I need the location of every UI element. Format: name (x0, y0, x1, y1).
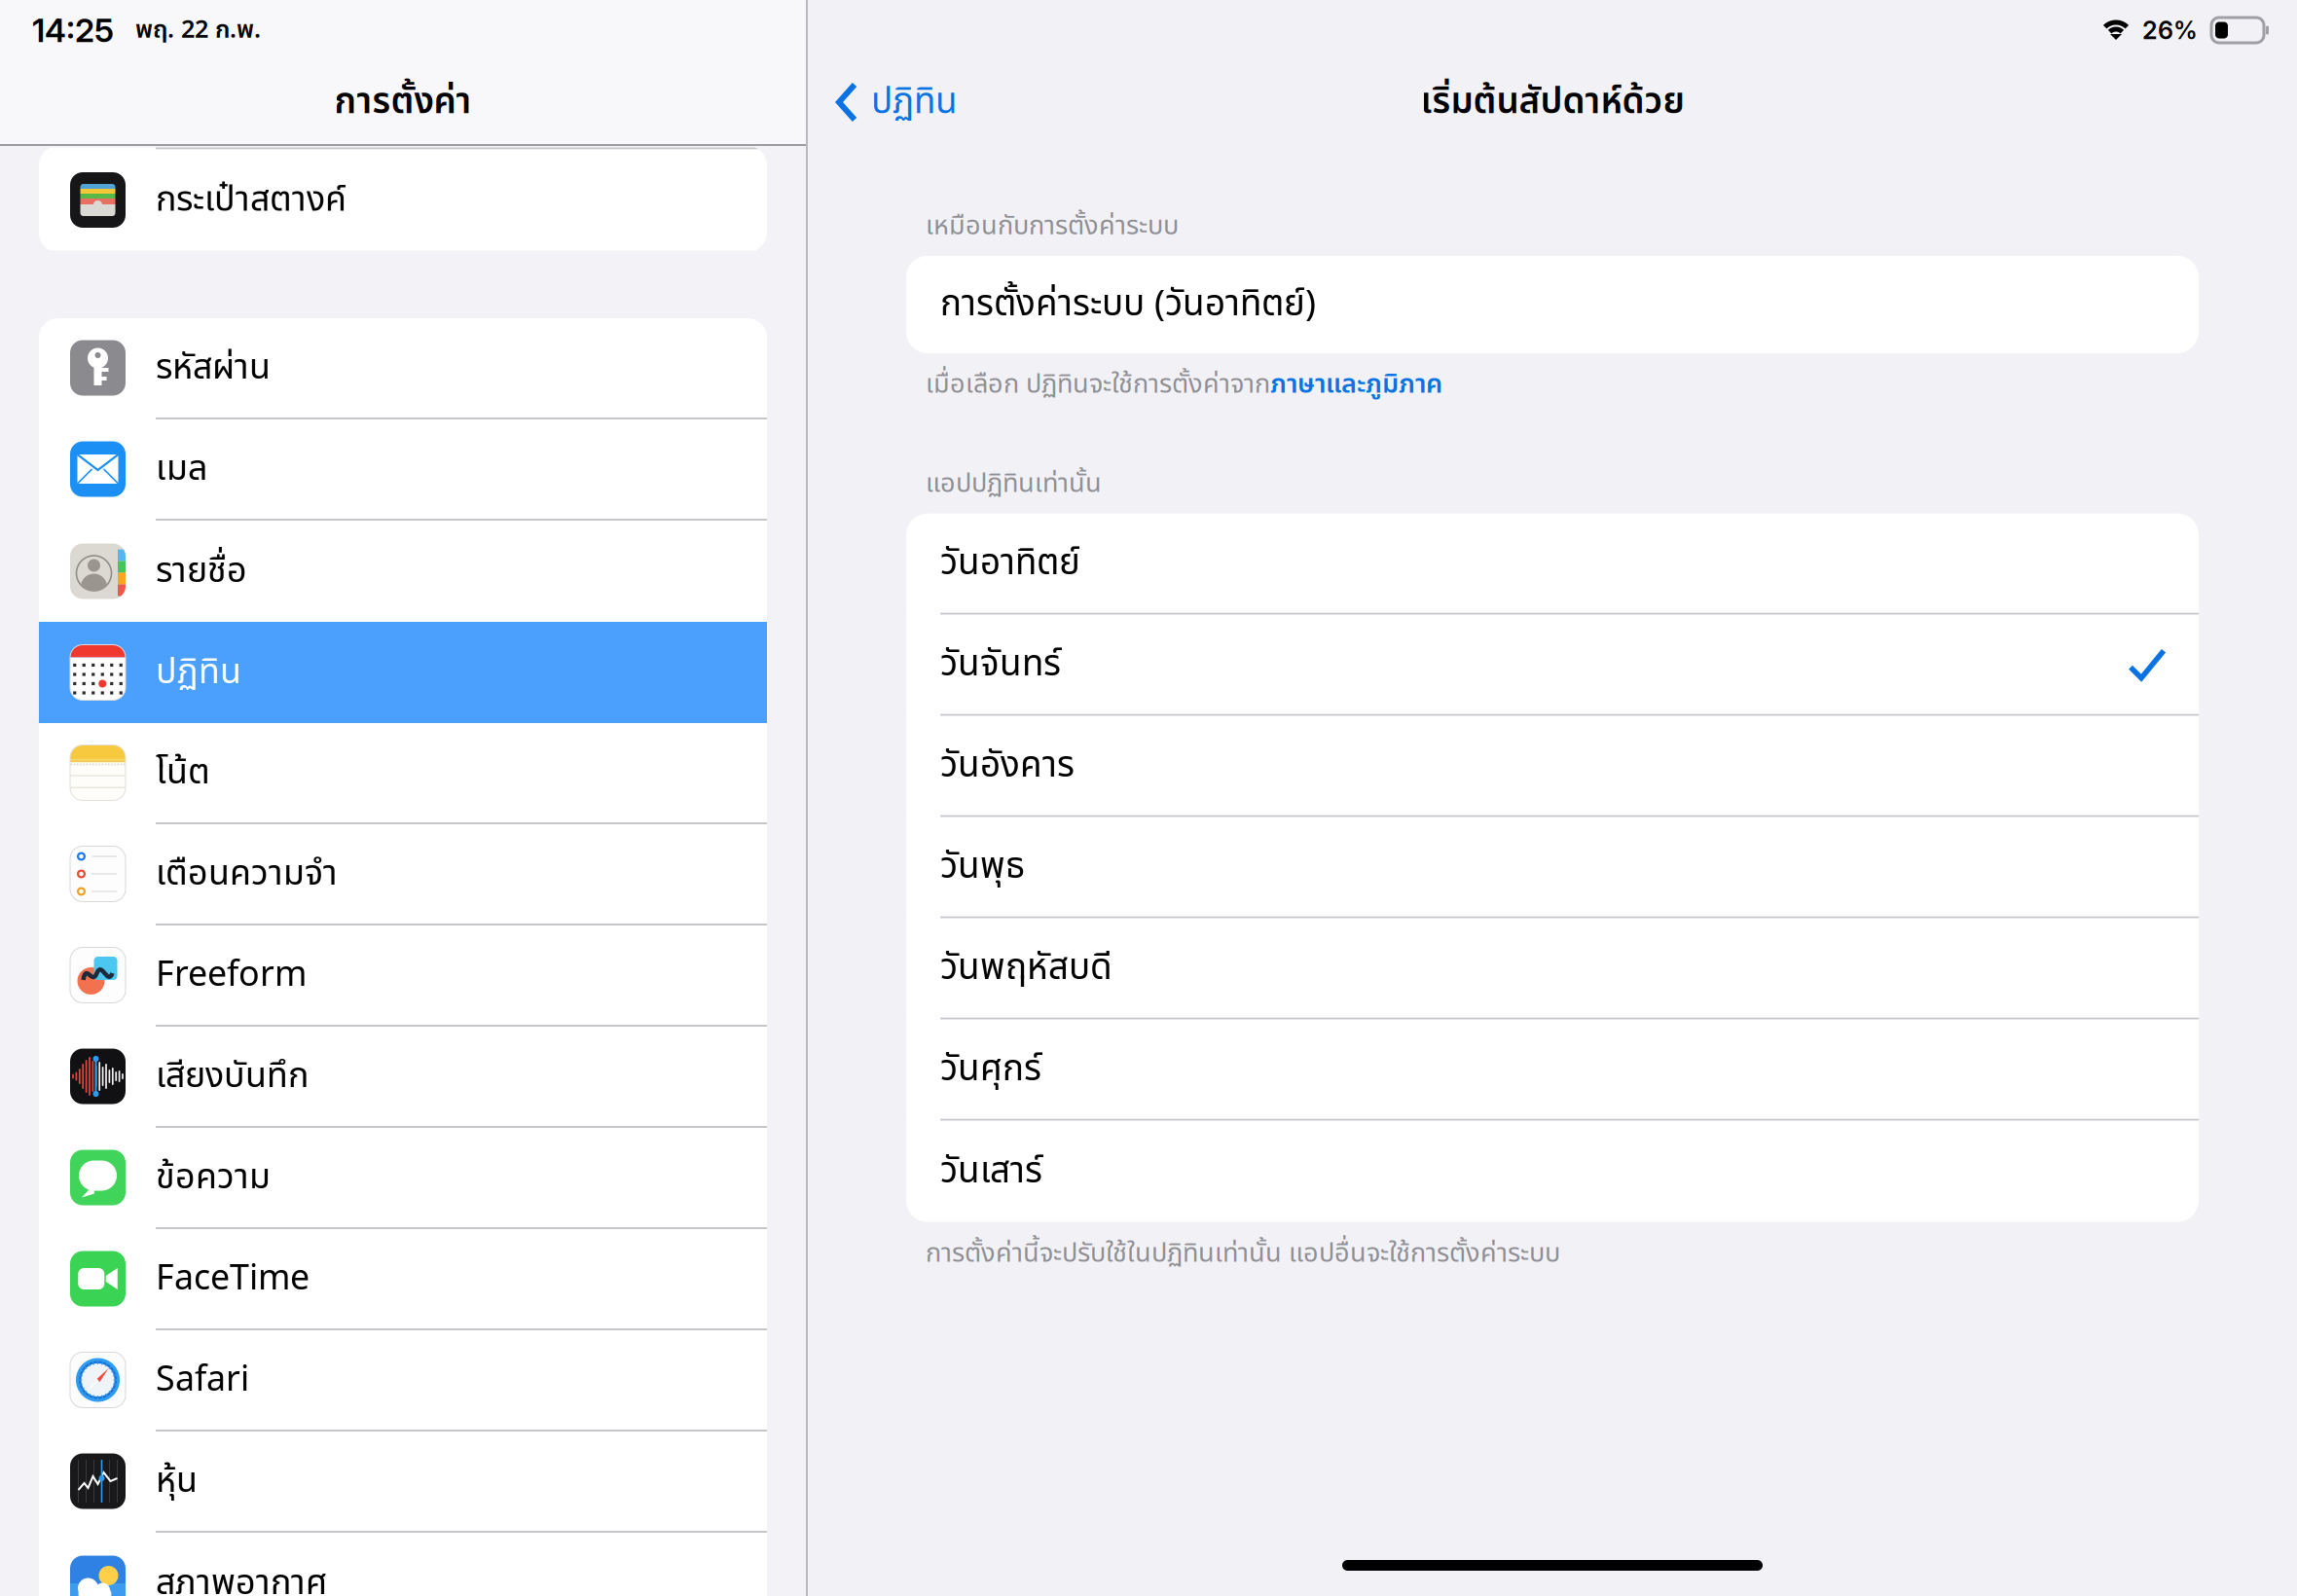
button[interactable]: ปฏิทิน (39, 622, 767, 723)
button[interactable]: เมล (39, 419, 767, 521)
button[interactable]: รหัสผ่าน (39, 318, 767, 419)
staticText: วันพฤหัสบดี (940, 941, 1112, 995)
staticText: เหมือนกับการตั้งค่าระบบ (926, 206, 1179, 246)
staticText: พฤ. 22 ก.พ. (135, 12, 261, 49)
staticText: วันพุธ (940, 840, 1025, 894)
staticText: กระเป๋าสตางค์ (156, 174, 346, 226)
staticText: Safari (156, 1354, 249, 1406)
staticText: ข้อความ (156, 1151, 271, 1204)
button[interactable]: ภาษาและภูมิภาค (1270, 365, 1442, 405)
button[interactable]: หุ้น (39, 1432, 767, 1533)
button[interactable]: วันอาทิตย์ (906, 514, 2199, 615)
button[interactable]: วันเสาร์ (906, 1121, 2199, 1222)
staticText: ปฏิทิน (871, 75, 958, 129)
staticText: หุ้น (156, 1455, 198, 1507)
staticText: วันจันทร์ (940, 637, 1061, 691)
staticText: โน้ต (156, 746, 210, 799)
staticText: รายชื่อ (156, 545, 247, 598)
button[interactable]: เสียงบันทึก (39, 1027, 767, 1128)
staticText: FaceTime (156, 1252, 310, 1305)
button[interactable]: วันจันทร์ (906, 615, 2199, 716)
staticText: เมื่อเลือก ปฏิทินจะใช้การตั้งค่าจาก (926, 365, 1270, 405)
button[interactable]: Safari (39, 1330, 767, 1432)
button[interactable]: การตั้งค่าระบบ (วันอาทิตย์) (906, 256, 2199, 353)
staticText: ภาษาและภูมิภาค (1270, 365, 1442, 405)
staticText: รหัสผ่าน (156, 342, 271, 394)
button[interactable]: ข้อความ (39, 1128, 767, 1229)
staticText: วันศุกร์ (940, 1042, 1041, 1096)
staticText: เริ่มต้นสัปดาห์ด้วย (1421, 75, 1684, 129)
button[interactable]: โน้ต (39, 723, 767, 824)
button[interactable]: วันพุธ (906, 817, 2199, 918)
staticText: การตั้งค่านี้จะปรับใช้ในปฏิทินเท่านั้น แ… (926, 1234, 1560, 1273)
staticText: วันอังคาร (940, 739, 1075, 793)
staticText: วันอาทิตย์ (940, 536, 1080, 590)
staticText: เมล (156, 443, 207, 495)
staticText: Freeform (156, 949, 307, 1001)
button[interactable]: กระเป๋าสตางค์ (39, 149, 767, 251)
button[interactable]: วันพฤหัสบดี (906, 918, 2199, 1020)
staticText: 14:25 (32, 11, 114, 50)
button[interactable]: FaceTime (39, 1229, 767, 1330)
staticText: 26% (2142, 15, 2198, 45)
staticText: เตือนความจำ (156, 848, 338, 900)
staticText: เสียงบันทึก (156, 1050, 309, 1103)
staticText: การตั้งค่าระบบ (วันอาทิตย์) (940, 277, 1316, 331)
staticText: แอปปฏิทินเท่านั้น (926, 464, 1102, 504)
button[interactable]: เตือนความจำ (39, 824, 767, 925)
staticText: สภาพอากาศ (156, 1557, 327, 1596)
staticText: การตั้งค่า (334, 75, 472, 129)
staticText: ปฏิทิน (156, 646, 241, 699)
button[interactable]: วันศุกร์ (906, 1020, 2199, 1121)
staticText: วันเสาร์ (940, 1144, 1042, 1198)
button[interactable]: ปฏิทิน (808, 65, 958, 139)
button[interactable]: สภาพอากาศ (39, 1533, 767, 1596)
button[interactable]: วันอังคาร (906, 716, 2199, 817)
button[interactable]: รายชื่อ (39, 521, 767, 622)
button[interactable]: Freeform (39, 925, 767, 1027)
